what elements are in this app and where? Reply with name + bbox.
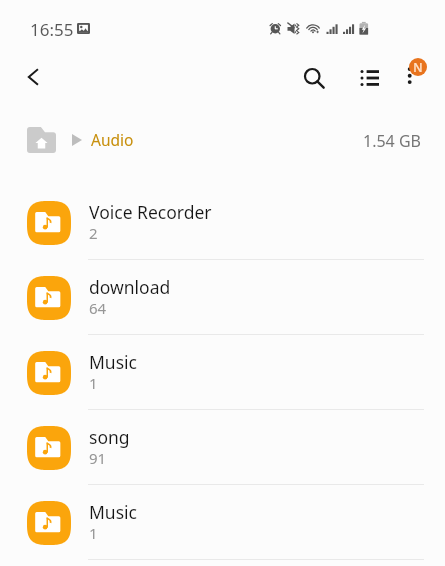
button[interactable]: Music (0, 335, 445, 410)
staticText: song (89, 425, 130, 449)
staticText: Music (89, 500, 137, 524)
button[interactable]: Music (0, 485, 445, 560)
staticText: download (89, 275, 171, 299)
button[interactable]: View as list (346, 54, 394, 102)
staticText: Voice Recorder (89, 200, 212, 224)
staticText: 64 (89, 298, 107, 318)
button[interactable]: Back (11, 54, 57, 100)
button[interactable]: More options (392, 54, 440, 102)
staticText: 2 (89, 223, 98, 243)
button[interactable]: Home folder (27, 127, 56, 153)
staticText: 16:55 (30, 18, 74, 41)
button[interactable]: song (0, 410, 445, 485)
staticText: 1 (89, 523, 98, 543)
button[interactable]: Audio (91, 129, 134, 150)
staticText: 1 (89, 373, 98, 393)
staticText: Music (89, 350, 137, 374)
button[interactable]: download (0, 260, 445, 335)
button[interactable]: Search (290, 54, 338, 102)
staticText: Audio (91, 129, 134, 150)
staticText: 91 (89, 448, 107, 468)
button[interactable]: Voice Recorder (0, 185, 445, 260)
staticText: N (413, 59, 423, 75)
staticText: 1.54 GB (363, 130, 421, 152)
